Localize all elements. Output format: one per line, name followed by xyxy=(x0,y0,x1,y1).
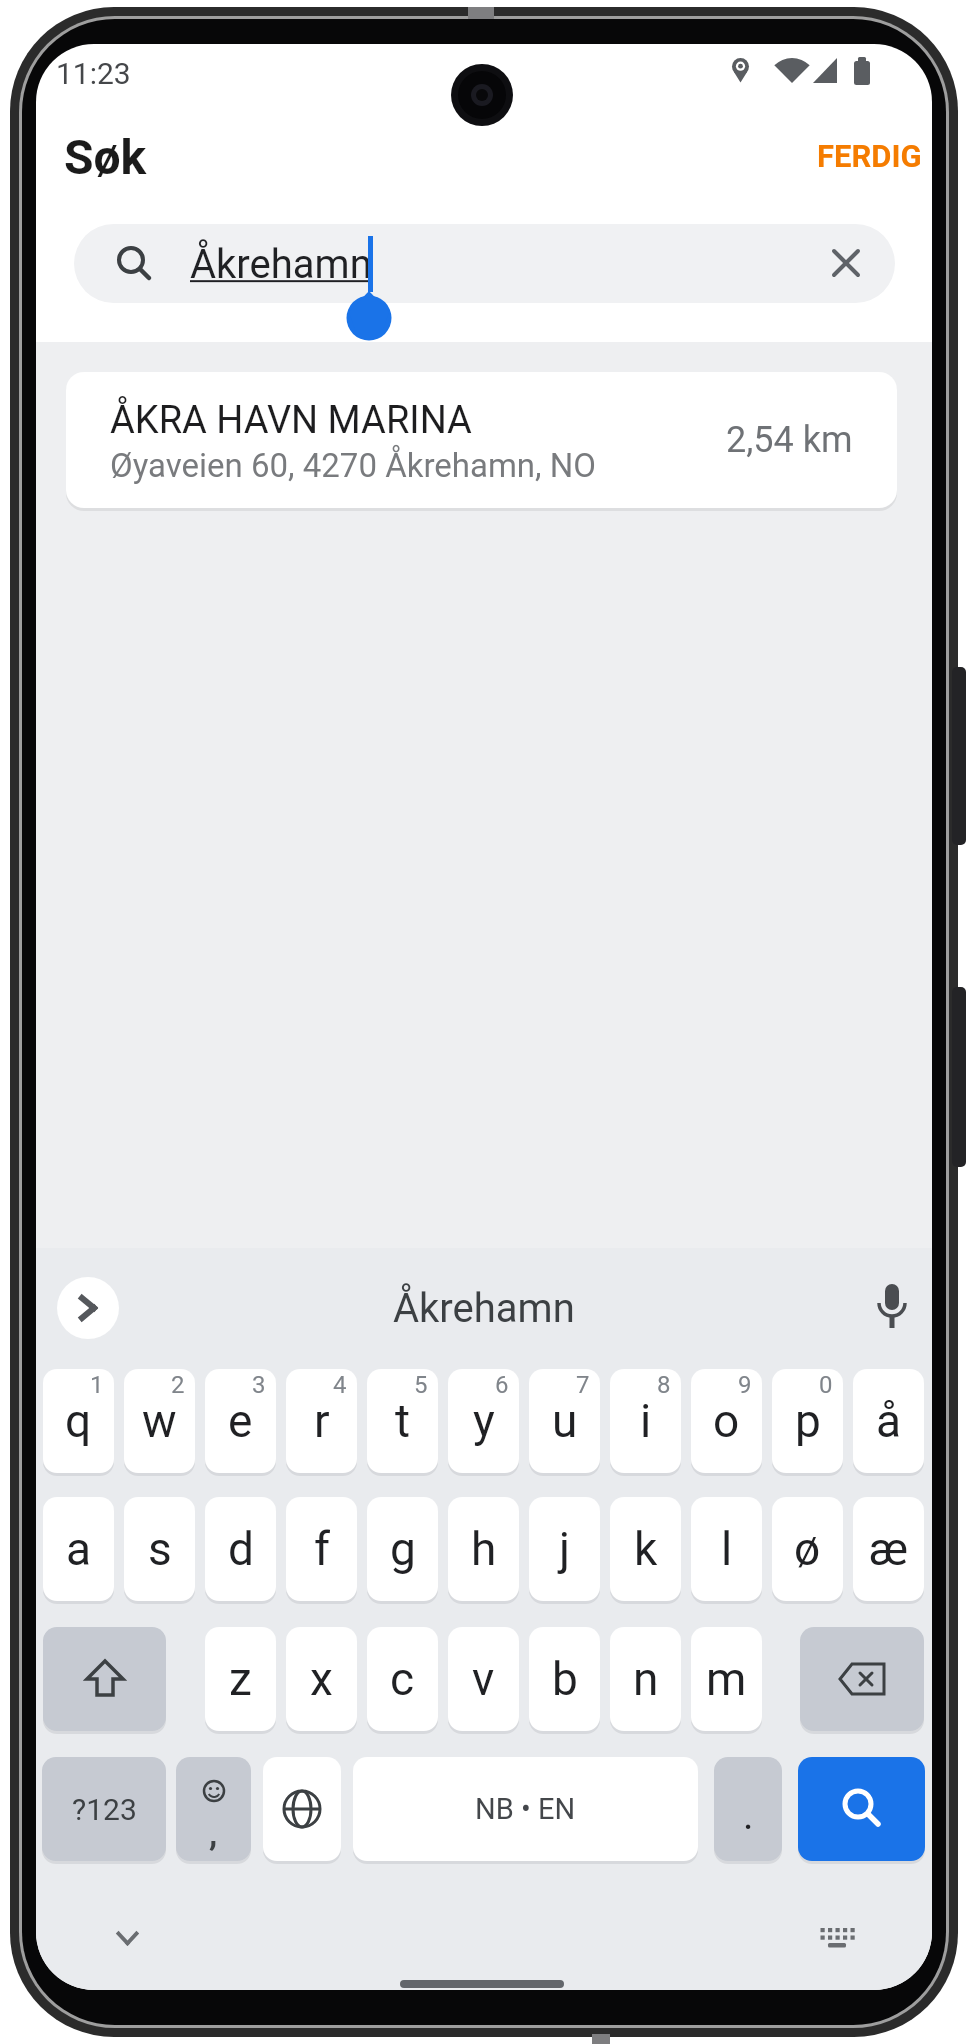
button[interactable]: z xyxy=(205,1627,276,1731)
staticText: Søk xyxy=(64,129,147,185)
staticText: x xyxy=(310,1652,333,1706)
button[interactable] xyxy=(102,1918,152,1958)
staticText: å xyxy=(876,1394,902,1448)
button[interactable] xyxy=(57,1277,119,1339)
button[interactable]: k xyxy=(610,1497,681,1601)
button[interactable]: e xyxy=(205,1369,276,1473)
button[interactable]: . xyxy=(714,1757,782,1861)
button[interactable]: u xyxy=(529,1369,600,1473)
staticText: n xyxy=(633,1652,659,1706)
button[interactable] xyxy=(860,1278,924,1338)
staticText: b xyxy=(552,1652,578,1706)
staticText: 5 xyxy=(414,1371,428,1399)
staticText: d xyxy=(228,1522,254,1576)
button[interactable] xyxy=(263,1757,341,1861)
staticText: 11:23 xyxy=(56,56,131,91)
button[interactable]: h xyxy=(448,1497,519,1601)
button[interactable]: ø xyxy=(772,1497,843,1601)
button[interactable]: å xyxy=(853,1369,924,1473)
button[interactable]: ?123 xyxy=(42,1757,166,1861)
staticText: u xyxy=(552,1394,578,1448)
staticText: r xyxy=(314,1394,330,1448)
button[interactable]: NB • EN xyxy=(353,1757,698,1861)
button[interactable]: t xyxy=(367,1369,438,1473)
staticText: a xyxy=(66,1522,92,1576)
staticText: 0 xyxy=(819,1371,833,1399)
button[interactable]: a xyxy=(43,1497,114,1601)
staticText: FERDIG xyxy=(817,138,922,174)
staticText: , xyxy=(209,1813,218,1853)
button[interactable] xyxy=(813,1918,863,1958)
button[interactable]: l xyxy=(691,1497,762,1601)
staticText: i xyxy=(640,1394,652,1448)
button[interactable]: o xyxy=(691,1369,762,1473)
staticText: v xyxy=(472,1652,495,1706)
button[interactable]: q xyxy=(43,1369,114,1473)
button[interactable]: f xyxy=(286,1497,357,1601)
staticText: 4 xyxy=(333,1371,347,1399)
button[interactable]: n xyxy=(610,1627,681,1731)
staticText: o xyxy=(713,1394,740,1448)
button[interactable]: ÅKRA HAVN MARINA xyxy=(66,372,897,508)
staticText: c xyxy=(390,1652,415,1706)
staticText: g xyxy=(390,1522,416,1576)
button[interactable]: x xyxy=(286,1627,357,1731)
button[interactable] xyxy=(43,1627,166,1731)
staticText: f xyxy=(314,1522,330,1576)
staticText: NB • EN xyxy=(475,1792,576,1826)
staticText: 2,54 km xyxy=(726,419,853,461)
button[interactable] xyxy=(798,1757,925,1861)
staticText: 3 xyxy=(252,1371,266,1399)
staticText: j xyxy=(559,1522,571,1576)
staticText: q xyxy=(65,1394,92,1448)
staticText: 8 xyxy=(657,1371,671,1399)
staticText: k xyxy=(634,1522,658,1576)
button[interactable]: y xyxy=(448,1369,519,1473)
staticText: ø xyxy=(794,1522,821,1576)
button[interactable]: g xyxy=(367,1497,438,1601)
button[interactable]: r xyxy=(286,1369,357,1473)
staticText: 2 xyxy=(171,1371,185,1399)
staticText: 1 xyxy=(90,1371,104,1399)
staticText: 9 xyxy=(738,1371,752,1399)
staticText: Åkrehamn xyxy=(190,241,372,288)
staticText: Åkrehamn xyxy=(393,1285,575,1332)
staticText: Øyaveien 60, 4270 Åkrehamn, NO xyxy=(110,446,596,485)
staticText: 6 xyxy=(495,1371,509,1399)
staticText: ?123 xyxy=(72,1792,137,1827)
button[interactable] xyxy=(819,236,875,292)
staticText: e xyxy=(228,1394,253,1448)
button[interactable] xyxy=(800,1627,924,1731)
button[interactable]: Åkrehamn xyxy=(74,224,895,303)
button[interactable]: m xyxy=(691,1627,762,1731)
staticText: w xyxy=(142,1394,177,1448)
button[interactable]: p xyxy=(772,1369,843,1473)
button[interactable]: FERDIG xyxy=(802,136,922,176)
button[interactable]: , xyxy=(176,1757,251,1861)
button[interactable]: Åkrehamn xyxy=(334,1274,634,1342)
button[interactable]: c xyxy=(367,1627,438,1731)
button[interactable]: s xyxy=(124,1497,195,1601)
staticText: 7 xyxy=(576,1371,590,1399)
staticText: p xyxy=(795,1394,821,1448)
staticText: ÅKRA HAVN MARINA xyxy=(110,398,472,443)
staticText: t xyxy=(395,1394,411,1448)
staticText: z xyxy=(229,1652,252,1706)
staticText: m xyxy=(706,1652,747,1706)
button[interactable]: v xyxy=(448,1627,519,1731)
button[interactable]: æ xyxy=(853,1497,924,1601)
button[interactable]: b xyxy=(529,1627,600,1731)
staticText: l xyxy=(721,1522,733,1576)
staticText: . xyxy=(743,1792,754,1839)
button[interactable]: w xyxy=(124,1369,195,1473)
staticText: s xyxy=(148,1522,172,1576)
staticText: æ xyxy=(869,1522,908,1576)
staticText: h xyxy=(471,1522,497,1576)
button[interactable]: i xyxy=(610,1369,681,1473)
button[interactable]: j xyxy=(529,1497,600,1601)
button[interactable]: d xyxy=(205,1497,276,1601)
staticText: y xyxy=(473,1394,495,1448)
